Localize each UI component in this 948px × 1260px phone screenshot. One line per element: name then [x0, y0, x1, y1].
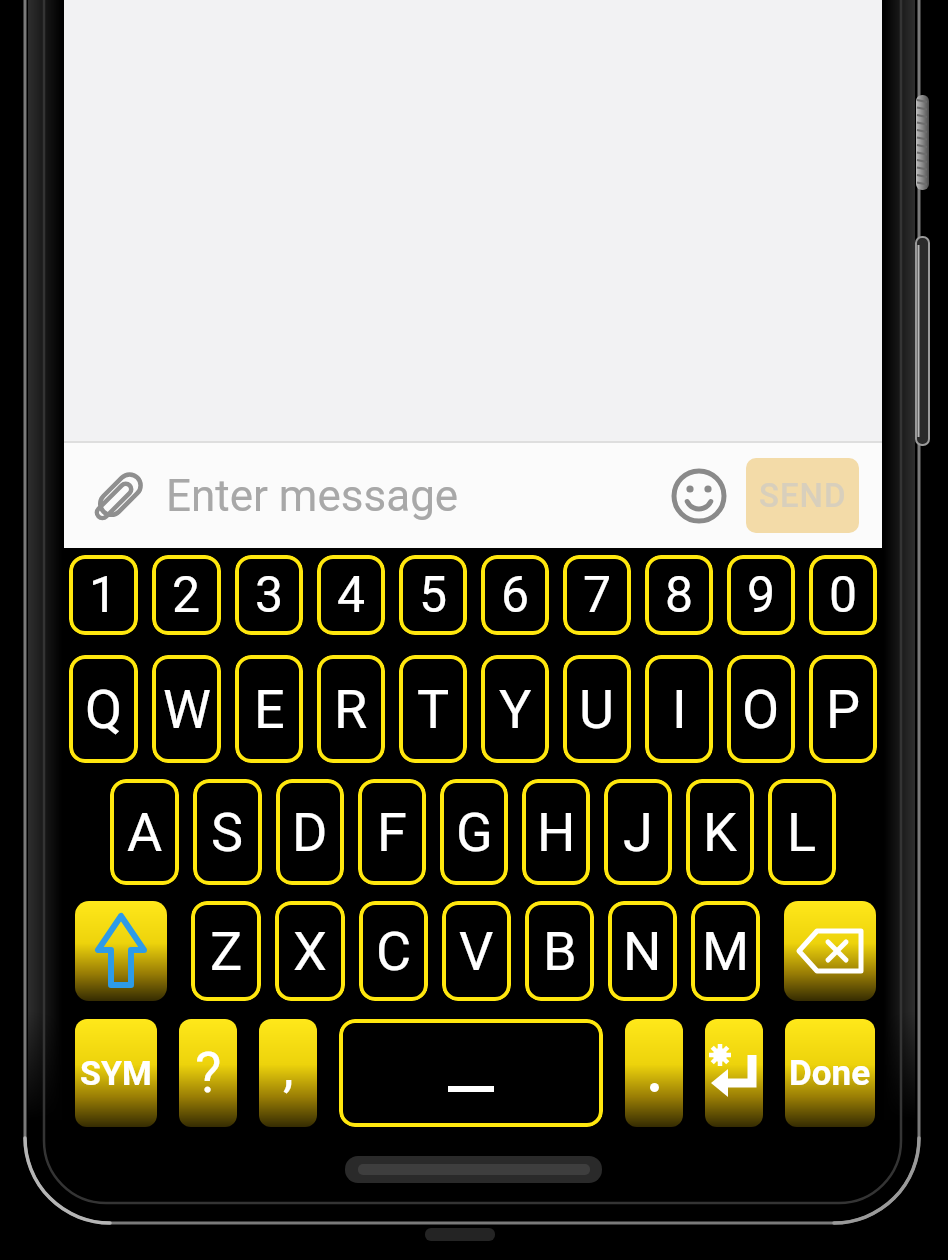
- button[interactable]: [671, 468, 727, 524]
- button[interactable]: SEND: [746, 458, 859, 533]
- button[interactable]: S: [193, 779, 262, 885]
- staticText: 6: [501, 566, 530, 625]
- staticText: 1: [89, 566, 118, 625]
- button[interactable]: F: [358, 779, 426, 885]
- staticText: E: [254, 678, 285, 741]
- button[interactable]: Enter message: [64, 443, 882, 548]
- staticText: L: [787, 801, 817, 864]
- staticText: X: [293, 920, 327, 983]
- button[interactable]: [75, 901, 167, 1001]
- button[interactable]: C: [359, 901, 428, 1001]
- button[interactable]: [92, 469, 146, 523]
- staticText: V: [459, 920, 494, 983]
- staticText: M: [702, 920, 750, 983]
- staticText: R: [334, 678, 368, 741]
- button[interactable]: 6: [481, 555, 549, 635]
- button[interactable]: [625, 1019, 683, 1127]
- staticText: 3: [255, 566, 284, 625]
- staticText: 7: [583, 566, 612, 625]
- button[interactable]: W: [152, 655, 221, 763]
- staticText: W: [163, 678, 211, 741]
- staticText: J: [623, 801, 653, 864]
- button[interactable]: V: [442, 901, 511, 1001]
- button[interactable]: I: [645, 655, 713, 763]
- button[interactable]: K: [686, 779, 754, 885]
- button[interactable]: R: [317, 655, 385, 763]
- button[interactable]: 0: [809, 555, 877, 635]
- staticText: SEND: [759, 476, 847, 515]
- staticText: F: [377, 801, 407, 864]
- staticText: ?: [195, 1040, 222, 1106]
- staticText: SYM: [80, 1053, 152, 1093]
- staticText: Z: [210, 920, 243, 983]
- staticText: O: [742, 678, 780, 741]
- button[interactable]: 1: [69, 555, 138, 635]
- button[interactable]: 8: [645, 555, 713, 635]
- button[interactable]: U: [563, 655, 631, 763]
- staticText: T: [417, 678, 450, 741]
- staticText: B: [543, 920, 577, 983]
- button[interactable]: A: [110, 779, 179, 885]
- staticText: A: [127, 801, 163, 864]
- button[interactable]: D: [276, 779, 344, 885]
- staticText: I: [672, 678, 687, 741]
- button[interactable]: [339, 1019, 603, 1127]
- button[interactable]: P: [809, 655, 877, 763]
- button[interactable]: M: [691, 901, 760, 1001]
- button[interactable]: [705, 1019, 763, 1127]
- staticText: U: [579, 678, 615, 741]
- button[interactable]: G: [440, 779, 508, 885]
- button[interactable]: 2: [152, 555, 221, 635]
- button[interactable]: T: [399, 655, 467, 763]
- staticText: N: [623, 920, 662, 983]
- staticText: C: [376, 920, 412, 983]
- button[interactable]: SYM: [75, 1019, 157, 1127]
- staticText: Enter message: [166, 470, 459, 522]
- button[interactable]: ,: [259, 1019, 317, 1127]
- staticText: 4: [337, 566, 366, 625]
- button[interactable]: L: [768, 779, 836, 885]
- staticText: ,: [283, 1036, 294, 1099]
- staticText: 8: [665, 566, 694, 625]
- staticText: 9: [747, 566, 776, 625]
- button[interactable]: Q: [69, 655, 138, 763]
- button[interactable]: O: [727, 655, 795, 763]
- button[interactable]: 5: [399, 555, 467, 635]
- button[interactable]: 3: [235, 555, 303, 635]
- button[interactable]: Z: [191, 901, 261, 1001]
- button[interactable]: X: [275, 901, 345, 1001]
- button[interactable]: N: [608, 901, 677, 1001]
- staticText: 5: [419, 566, 448, 625]
- button[interactable]: ?: [179, 1019, 237, 1127]
- button[interactable]: Done: [785, 1019, 875, 1127]
- button[interactable]: 7: [563, 555, 631, 635]
- button[interactable]: B: [525, 901, 594, 1001]
- button[interactable]: 9: [727, 555, 795, 635]
- staticText: D: [292, 801, 328, 864]
- staticText: 0: [829, 566, 858, 625]
- staticText: S: [211, 801, 244, 864]
- button[interactable]: Y: [481, 655, 549, 763]
- button[interactable]: 4: [317, 555, 385, 635]
- button[interactable]: H: [522, 779, 590, 885]
- button[interactable]: E: [235, 655, 303, 763]
- staticText: G: [456, 801, 493, 864]
- staticText: Q: [85, 678, 123, 741]
- staticText: H: [537, 801, 576, 864]
- staticText: Done: [789, 1053, 871, 1094]
- button[interactable]: J: [604, 779, 672, 885]
- staticText: K: [703, 801, 737, 864]
- button[interactable]: [784, 901, 876, 1001]
- staticText: Y: [499, 678, 532, 741]
- staticText: P: [826, 678, 861, 741]
- staticText: 2: [172, 566, 201, 625]
